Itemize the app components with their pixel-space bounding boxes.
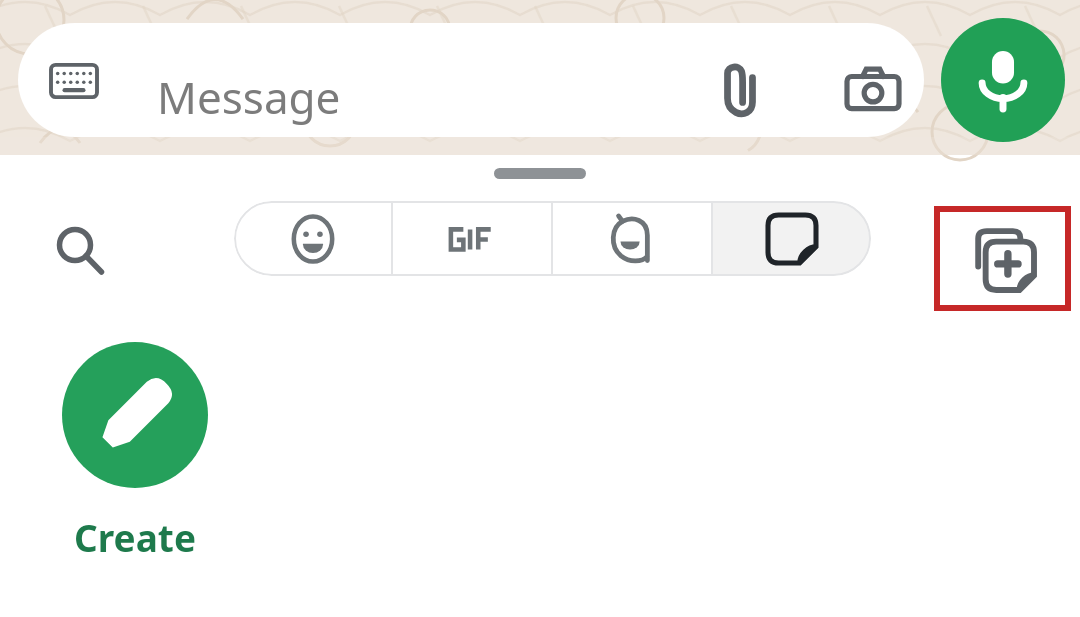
button[interactable]: Camera	[839, 56, 907, 124]
staticText: Create	[74, 512, 196, 562]
button[interactable]: Voice message	[941, 18, 1065, 142]
button[interactable]: Keyboard	[18, 23, 924, 137]
button[interactable]: Attach	[706, 56, 774, 124]
button[interactable]: Keyboard	[46, 53, 102, 109]
button[interactable]: Create	[46, 342, 224, 562]
staticText: Message	[157, 67, 341, 127]
button[interactable]: GIF	[393, 201, 551, 276]
button[interactable]: Stickers	[713, 201, 871, 276]
button[interactable]: Emoji	[234, 201, 391, 276]
button[interactable]: Search	[42, 213, 118, 289]
button[interactable]: Avatars	[553, 201, 711, 276]
button[interactable]: Add stickers	[934, 206, 1071, 311]
